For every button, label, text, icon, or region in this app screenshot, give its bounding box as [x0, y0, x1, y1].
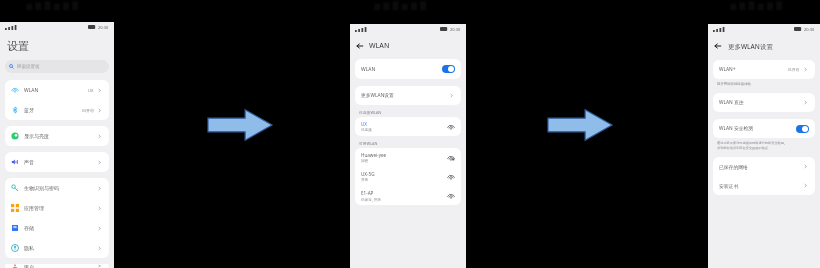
staticText: 20:30 — [804, 27, 815, 32]
button[interactable]: 声音 — [5, 152, 109, 172]
staticText: 可用WLAN — [359, 141, 378, 146]
staticText: WLAN 直连 — [719, 99, 744, 106]
staticText: WLAN 安全检测 — [719, 125, 754, 132]
button[interactable]: 生物识别与密码 — [5, 178, 109, 198]
staticText: UX — [361, 121, 368, 127]
staticText: 通过手机管家对已连接的网络进行网络安全检测, — [717, 141, 785, 145]
button[interactable]: Back — [355, 41, 365, 51]
button[interactable]: E1-AP — [355, 186, 461, 205]
staticText: 存储 — [24, 225, 34, 231]
staticText: 安装证书 — [719, 183, 739, 189]
button[interactable]: 用户 — [5, 264, 109, 268]
staticText: 已保存的网络 — [719, 164, 748, 170]
staticText: 蓝牙 — [24, 107, 34, 113]
staticText: 隐私 — [24, 245, 34, 251]
staticText: WLAN+ — [719, 66, 736, 73]
button[interactable]: 搜索设置项 — [5, 60, 109, 73]
staticText: 搜索设置项 — [17, 64, 40, 70]
button[interactable]: Huawei-yee — [355, 148, 461, 167]
button[interactable]: 更多WLAN设置 — [355, 86, 461, 105]
button[interactable]: WLAN — [355, 59, 461, 79]
staticText: 20:30 — [450, 27, 461, 32]
staticText: E1-AP — [361, 190, 374, 196]
staticText: 20:30 — [98, 25, 109, 30]
button[interactable]: Toggle — [796, 125, 809, 133]
staticText: 声音 — [24, 159, 34, 165]
button[interactable]: Back — [713, 41, 723, 51]
staticText: 并智能自动识别存在安全风险的热点 — [717, 146, 768, 150]
staticText: 设置 — [7, 39, 29, 53]
staticText: WLAN — [361, 66, 376, 73]
staticText: 更多WLAN设置 — [728, 42, 773, 51]
staticText: 已连接 — [361, 128, 372, 133]
staticText: 更多WLAN设置 — [361, 92, 394, 99]
staticText: WLAN — [24, 87, 39, 94]
button[interactable]: Toggle — [442, 65, 455, 73]
staticText: 应用管理 — [24, 205, 44, 211]
button[interactable]: 安装证书 — [713, 176, 815, 195]
button[interactable]: WLAN 直连 — [713, 93, 815, 112]
staticText: 生物识别与密码 — [24, 185, 59, 191]
button[interactable]: 隐私 — [5, 238, 109, 258]
staticText: 已连接WLAN — [359, 110, 382, 115]
button[interactable]: WLAN — [5, 80, 109, 100]
staticText: 提升网络智能连接体验 — [717, 82, 751, 86]
staticText: 已保存, 开放 — [361, 197, 381, 202]
button[interactable]: 存储 — [5, 218, 109, 238]
staticText: Huawei-yee — [361, 152, 387, 158]
staticText: 已开启 — [788, 67, 800, 72]
button[interactable]: 蓝牙 — [5, 100, 109, 120]
staticText: 用户 — [24, 264, 34, 268]
staticText: WLAN — [369, 41, 390, 51]
button[interactable]: 显示与亮度 — [5, 126, 109, 146]
button[interactable]: WLAN 安全检测 — [713, 119, 815, 138]
button[interactable]: 已保存的网络 — [713, 157, 815, 176]
staticText: 开放 — [361, 178, 369, 183]
staticText: 加密 — [361, 159, 369, 164]
staticText: 已开启 — [82, 108, 94, 113]
button[interactable]: UX-5G — [355, 167, 461, 186]
button[interactable]: 应用管理 — [5, 198, 109, 218]
staticText: 显示与亮度 — [24, 133, 49, 139]
staticText: UX-5G — [361, 171, 375, 177]
button[interactable]: UX — [355, 117, 461, 136]
staticText: UX — [88, 88, 94, 93]
button[interactable]: WLAN+ — [713, 60, 815, 79]
